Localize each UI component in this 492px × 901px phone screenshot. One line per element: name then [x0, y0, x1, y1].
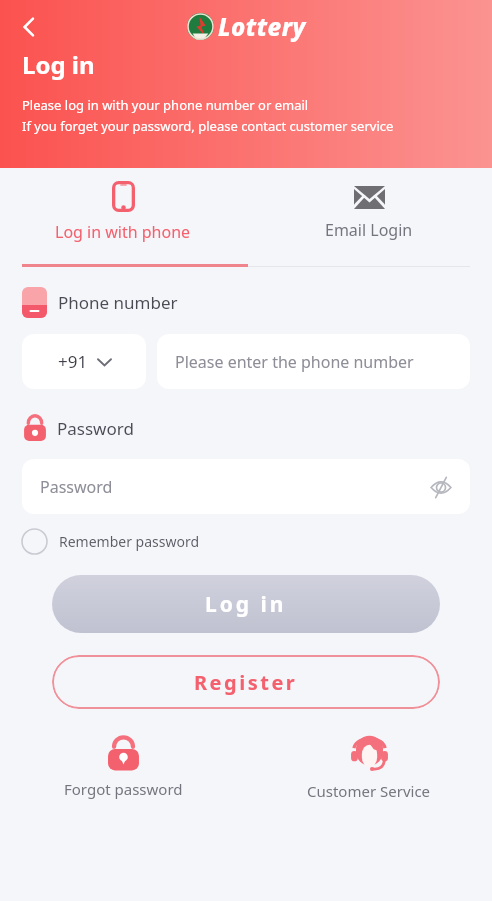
button[interactable]: Email Login: [246, 168, 492, 267]
button[interactable]: Log in with phone: [0, 168, 246, 267]
staticText: Remember password: [59, 532, 200, 551]
staticText: Please log in with your phone number or …: [22, 96, 309, 114]
button[interactable]: Register: [52, 655, 440, 709]
staticText: Log in with phone: [55, 221, 191, 243]
button[interactable]: Remember password: [21, 528, 200, 555]
button[interactable]: Show password: [426, 472, 456, 502]
button[interactable]: Password: [22, 459, 470, 514]
staticText: +91: [58, 350, 88, 373]
button[interactable]: Customer Service: [246, 733, 492, 801]
button[interactable]: Back: [8, 6, 50, 48]
button[interactable]: Please enter the phone number: [157, 334, 470, 389]
staticText: Register: [194, 669, 298, 696]
staticText: Phone number: [58, 291, 178, 314]
staticText: Forgot password: [64, 779, 183, 799]
staticText: Please enter the phone number: [175, 351, 414, 373]
staticText: Password: [40, 476, 113, 498]
staticText: Email Login: [325, 219, 413, 241]
button[interactable]: Log in: [52, 575, 440, 633]
staticText: If you forget your password, please cont…: [22, 117, 394, 135]
button[interactable]: Forgot password: [0, 733, 246, 799]
staticText: Log in: [22, 48, 95, 81]
staticText: Customer Service: [307, 781, 431, 801]
staticText: Lottery: [218, 10, 306, 43]
staticText: Log in: [205, 590, 287, 619]
button[interactable]: +91: [22, 334, 146, 389]
staticText: Password: [57, 417, 134, 440]
